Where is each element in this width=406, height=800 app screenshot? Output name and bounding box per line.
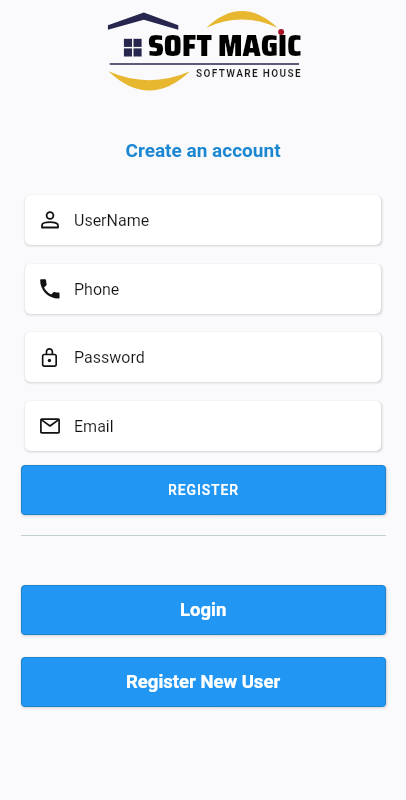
staticText: Password [74, 348, 145, 367]
staticText: Phone [74, 280, 120, 299]
staticText: Register New User [126, 671, 281, 693]
staticText: Login [180, 599, 227, 621]
staticText: SOFT MAGIC [148, 22, 302, 69]
button[interactable]: Phone field [25, 264, 381, 314]
staticText: Email [74, 417, 114, 436]
staticText: Create an account [0, 139, 406, 161]
staticText: SOFTWARE HOUSE [196, 68, 302, 80]
button[interactable]: Register New User [21, 657, 386, 707]
button[interactable]: Password field [25, 332, 381, 382]
button[interactable]: Username field [25, 195, 381, 245]
button[interactable]: Login [21, 585, 386, 635]
staticText: REGISTER [168, 482, 239, 498]
button[interactable]: Email field [25, 401, 381, 451]
button[interactable]: REGISTER [21, 465, 386, 515]
staticText: UserName [74, 211, 150, 230]
